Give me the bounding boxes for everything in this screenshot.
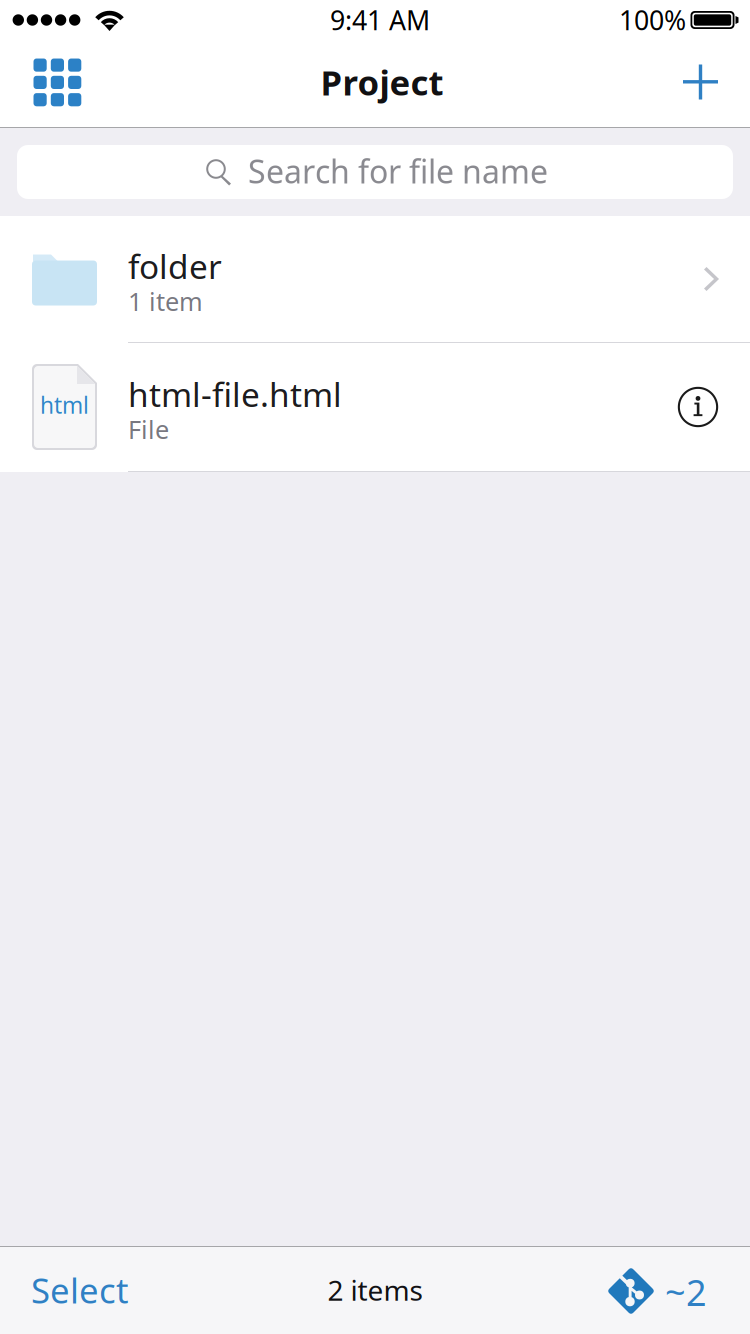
staticText: File [128,412,169,446]
button[interactable]: folder [0,216,750,342]
staticText: 9:41 AM [330,2,430,38]
button[interactable]: Git changes, 2 modified [604,1246,750,1333]
staticText: ~2 [665,1268,707,1316]
staticText: html [40,390,89,420]
staticText: html-file.html [128,372,342,416]
button[interactable]: Repositories [0,44,104,128]
button[interactable]: Add [650,44,750,128]
button[interactable]: html [0,343,750,471]
button[interactable]: Select [0,1246,160,1333]
staticText: 100% [619,2,686,38]
staticText: 1 item [128,284,203,318]
staticText: Search for file name [248,150,548,192]
staticText: folder [128,244,222,288]
button[interactable]: Search for file name [17,145,733,199]
staticText: Project [320,59,443,105]
staticText: Select [31,1267,129,1313]
staticText: 2 items [327,1271,422,1309]
